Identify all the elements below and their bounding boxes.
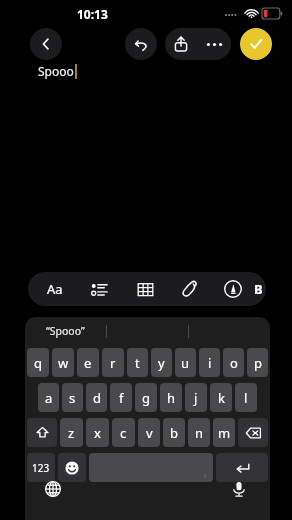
staticText: f [119,389,124,407]
staticText: n [195,424,204,442]
staticText: i [208,354,212,372]
button[interactable]: v [138,418,160,447]
button[interactable]: 123 [27,453,55,482]
button[interactable]: g [135,383,157,412]
staticText: w [58,354,69,372]
button[interactable]: z [60,418,83,447]
staticText: B [254,280,263,298]
button[interactable]: More options [197,28,231,60]
button[interactable]: Change keyboard [40,476,66,502]
staticText: m [218,424,231,442]
staticText: “Spooo” [46,324,85,338]
staticText: g [142,389,150,407]
button[interactable]: Backspace [238,418,268,447]
button[interactable]: t [127,348,148,377]
button[interactable]: Back [30,28,62,60]
staticText: v [146,424,153,442]
button[interactable]: Aa [36,272,74,306]
staticText: o [230,354,238,372]
staticText: x [94,424,101,442]
button[interactable]: i [199,348,220,377]
button[interactable]: j [185,383,207,412]
button[interactable]: Attach file [170,272,208,306]
staticText: y [158,354,165,372]
button[interactable]: k [210,383,232,412]
button[interactable]: s [62,383,83,412]
button[interactable]: p [247,348,268,377]
button[interactable]: o [223,348,244,377]
staticText: t [135,354,140,372]
staticText: c [120,424,127,442]
staticText: e [84,354,92,372]
button[interactable] [189,317,270,345]
staticText: 123 [32,461,50,475]
button[interactable]: u [175,348,196,377]
staticText: h [167,389,176,407]
staticText: Spooo [38,63,74,79]
staticText: d [93,389,101,407]
button[interactable]: Emoji [58,453,86,482]
button[interactable]: B [254,272,266,306]
button[interactable]: n [188,418,210,447]
button[interactable]: Table [126,272,164,306]
staticText: b [170,424,178,442]
button[interactable]: l [235,383,257,412]
staticText: l [244,389,248,407]
button[interactable]: x [86,418,109,447]
button[interactable]: r [102,348,124,377]
button[interactable]: q [27,348,49,377]
button[interactable]: y [151,348,172,377]
staticText: z [68,424,75,442]
button[interactable]: Dictation [226,476,252,502]
button[interactable]: b [163,418,185,447]
button[interactable]: Done [240,28,272,60]
button[interactable]: Bullet list [80,272,118,306]
button[interactable]: Undo [125,28,157,60]
staticText: q [34,354,42,372]
staticText: j [194,389,198,407]
button[interactable]: d [86,383,107,412]
staticText: Aa [47,280,63,298]
button[interactable]: Shift [27,418,57,447]
button[interactable]: f [110,383,132,412]
button[interactable]: e [77,348,99,377]
staticText: s [69,389,76,407]
staticText: p [254,354,262,372]
button[interactable]: Markup [214,272,252,306]
button[interactable]: m [213,418,235,447]
staticText: 10:13 [77,6,108,22]
staticText: a [45,389,53,407]
button[interactable]: “Spooo” [25,317,106,345]
button[interactable]: w [52,348,74,377]
button[interactable]: c [112,418,135,447]
button[interactable]: Return [216,453,268,482]
button[interactable]: h [160,383,182,412]
staticText: k [218,389,225,407]
button[interactable]: a [38,383,59,412]
button[interactable]: Share [165,28,197,60]
staticText: r [110,354,116,372]
staticText: u [181,354,190,372]
